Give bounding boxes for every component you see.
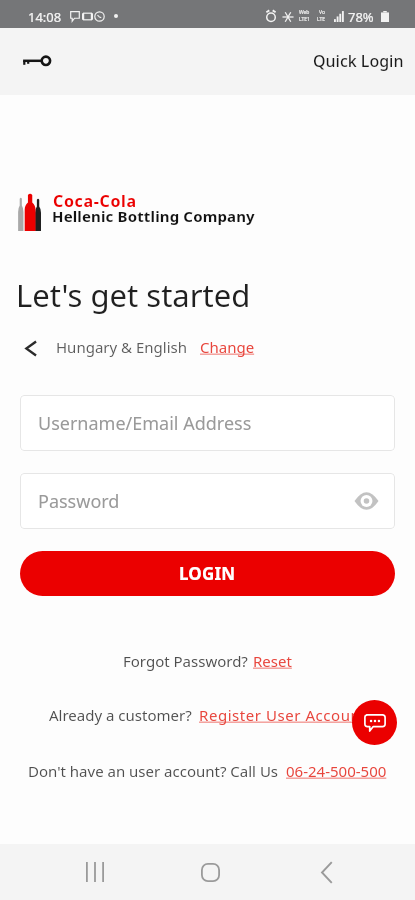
button[interactable]: LOGIN [20,551,395,596]
button[interactable]: Show password [352,487,380,515]
staticText: Web [299,9,310,16]
button[interactable]: Recent apps [66,852,124,892]
staticText: LOGIN [179,562,236,585]
staticText: 14:08 [28,8,62,26]
staticText: Coca-Cola [53,190,137,212]
staticText: 78% [348,8,374,26]
staticText: Register User Account [199,705,367,725]
staticText: Password [38,489,120,514]
button[interactable]: Password [20,473,395,529]
staticText: Don't have an user account? Call Us [28,761,279,781]
button[interactable]: Home [181,852,239,892]
staticText: Forgot Password? [123,651,248,671]
staticText: Username/Email Address [38,411,252,436]
button[interactable]: Quick Login [313,50,404,72]
button[interactable]: Chat support [352,700,397,745]
staticText: 06-24-500-500 [286,761,387,781]
button[interactable]: Username/Email Address [20,395,395,451]
button[interactable]: Register User Account [199,705,367,725]
button[interactable]: Reset [253,651,292,671]
staticText: Reset [253,651,292,671]
staticText: Change [200,337,255,357]
staticText: LTE1 [299,16,310,23]
button[interactable]: Quick login with key [15,39,59,83]
staticText: Hungary & English [56,337,187,357]
staticText: Already a customer? [49,705,192,725]
staticText: Let's get started [16,274,251,316]
button[interactable]: 06-24-500-500 [286,761,387,781]
staticText: LTE [317,16,326,23]
staticText: Vo [319,9,325,16]
button[interactable]: Back [297,852,355,892]
button[interactable]: Hungary & English [25,336,255,357]
staticText: Hellenic Bottling Company [52,206,255,226]
staticText: Quick Login [313,50,404,72]
